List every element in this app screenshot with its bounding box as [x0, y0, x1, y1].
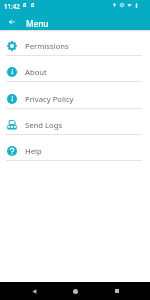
staticText: Permissions	[25, 41, 69, 51]
staticText: 11:42	[4, 2, 20, 10]
button[interactable]: Recent apps	[109, 283, 125, 299]
button[interactable]: Help	[0, 135, 150, 161]
button[interactable]: About	[0, 56, 150, 82]
staticText: Menu	[26, 18, 49, 29]
button[interactable]: Home	[67, 283, 83, 299]
button[interactable]: Send Logs	[0, 109, 150, 135]
staticText: Help	[25, 146, 42, 156]
staticText: About	[25, 67, 47, 77]
staticText: Send Logs	[25, 120, 63, 130]
staticText: Privacy Policy	[25, 94, 74, 104]
button[interactable]: Back	[26, 283, 42, 299]
button[interactable]: Privacy Policy	[0, 82, 150, 109]
button[interactable]: Permissions	[0, 30, 150, 56]
button[interactable]: Back	[2, 12, 21, 31]
